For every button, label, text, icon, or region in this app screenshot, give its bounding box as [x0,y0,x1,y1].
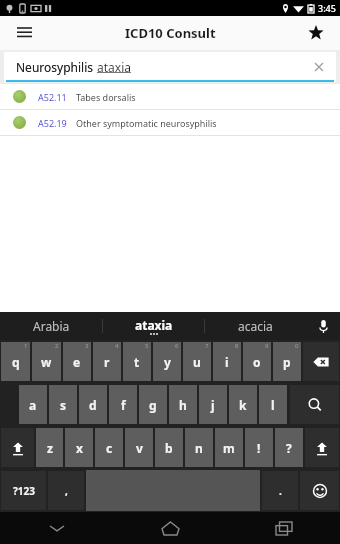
button[interactable]: n [185,428,213,467]
staticText: p [283,354,291,370]
staticText: y [164,354,171,370]
staticText: n [195,440,203,456]
staticText: b [165,440,173,456]
button[interactable]: z [36,428,63,467]
staticText: Other symptomatic neurosyphilis [76,117,217,129]
button[interactable]: g [139,385,167,424]
button[interactable]: d [79,385,107,424]
staticText: f [121,397,126,413]
button[interactable]: ! [245,428,273,467]
staticText: 1 [24,342,28,350]
button[interactable]: ? [275,428,303,467]
button[interactable]: s [49,385,77,424]
button[interactable]: o [243,342,271,381]
button[interactable]: k [229,385,257,424]
staticText: ICD10 Consult [125,24,216,42]
staticText: r [104,354,110,370]
button[interactable]: l [259,385,287,424]
staticText: 3 [85,342,89,350]
staticText: 6 [175,342,179,350]
button[interactable]: i [213,342,241,381]
button[interactable]: x [65,428,93,467]
staticText: t [134,354,140,370]
button[interactable]: b [155,428,183,467]
button[interactable]: ataxia [103,312,204,340]
button[interactable]: m [215,428,243,467]
staticText: a [29,397,37,413]
button[interactable]: Arabia [0,312,102,340]
button[interactable]: u [183,342,211,381]
staticText: 5 [145,342,149,350]
button[interactable]: Open navigation menu [8,17,40,49]
button[interactable]: Home [114,512,227,544]
staticText: ! [257,440,261,456]
staticText: h [179,397,187,413]
staticText: A52.11 [38,91,76,103]
staticText: 8 [235,342,239,350]
button[interactable]: acacia [205,312,306,340]
staticText: g [149,397,157,413]
button[interactable]: a [19,385,47,424]
button[interactable]: f [109,385,137,424]
button[interactable]: , [48,471,84,510]
button[interactable]: Hide keyboard [0,512,114,544]
staticText: 2 [55,342,59,350]
staticText: , [65,484,68,498]
button[interactable]: v [125,428,153,467]
staticText: ?123 [13,484,35,498]
button[interactable]: Favorites [300,17,332,49]
button[interactable]: Neurosyphilis [4,52,336,82]
staticText: 4 [115,342,119,350]
staticText: d [89,397,97,413]
button[interactable]: r [93,342,121,381]
staticText: 3:45 [318,2,336,14]
staticText: k [239,397,247,413]
staticText: Neurosyphilis [16,59,97,75]
staticText: x [76,440,83,456]
button[interactable]: y [153,342,181,381]
staticText: o [253,354,261,370]
staticText: ataxia [135,317,173,333]
staticText: . [279,484,282,498]
staticText: q [12,354,20,370]
button[interactable]: A52.11 [0,84,340,109]
staticText: ataxia [97,59,131,75]
staticText: z [47,440,53,456]
staticText: j [211,397,215,413]
button[interactable]: Voice input [306,312,340,340]
button[interactable]: Shift [305,428,339,467]
button[interactable]: Emoji [300,471,339,510]
button[interactable]: . [262,471,298,510]
button[interactable]: c [95,428,123,467]
staticText: w [41,354,52,370]
staticText: 7 [205,342,209,350]
button[interactable]: Recent apps [227,512,340,544]
staticText: Neurosyphilis [16,59,97,75]
button[interactable]: Clear search [308,56,330,78]
staticText: Arabia [33,318,70,334]
button[interactable]: Search [290,385,339,424]
button[interactable]: A52.19 [0,110,340,135]
button[interactable]: e [63,342,91,381]
button[interactable]: Shift [1,428,34,467]
staticText: 0 [295,342,299,350]
button[interactable]: Delete [303,342,339,381]
staticText: v [136,440,143,456]
button[interactable]: q [1,342,30,381]
button[interactable]: w [32,342,61,381]
button[interactable]: p [273,342,301,381]
staticText: l [271,397,275,413]
staticText: e [73,354,81,370]
staticText: ? [286,440,292,456]
button[interactable]: t [123,342,151,381]
button[interactable]: j [199,385,227,424]
staticText: u [193,354,201,370]
staticText: 9 [265,342,269,350]
staticText: i [225,354,229,370]
button[interactable]: ?123 [1,471,46,510]
button[interactable]: h [169,385,197,424]
staticText: s [60,397,67,413]
staticText: m [223,440,235,456]
staticText: acacia [238,318,273,334]
